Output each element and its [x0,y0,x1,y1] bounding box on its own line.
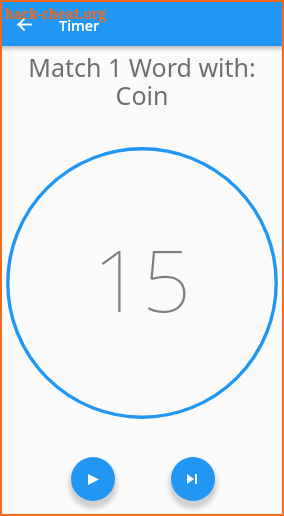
button[interactable]: Next [171,457,215,501]
button[interactable]: Play [71,457,115,501]
staticText: hack-cheat.org [5,5,107,23]
staticText: Timer [59,15,100,35]
staticText: 15 [93,220,192,337]
staticText: Match 1 Word with: Coin [2,50,282,113]
button[interactable]: Back [7,7,41,41]
